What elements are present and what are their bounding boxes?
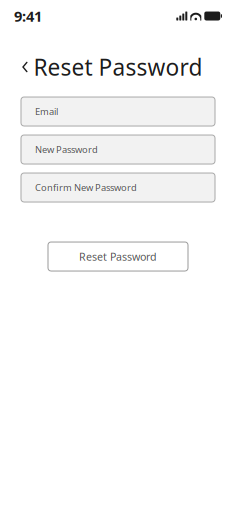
button[interactable]: Reset Password [48,242,188,271]
staticText: Reset Password [79,249,157,264]
staticText: New Password [35,143,98,156]
staticText: 9:41 [14,6,42,26]
staticText: Email [35,105,58,118]
button[interactable]: Back [12,52,38,82]
staticText: Confirm New Password [35,181,137,194]
staticText: Reset Password [33,52,202,82]
